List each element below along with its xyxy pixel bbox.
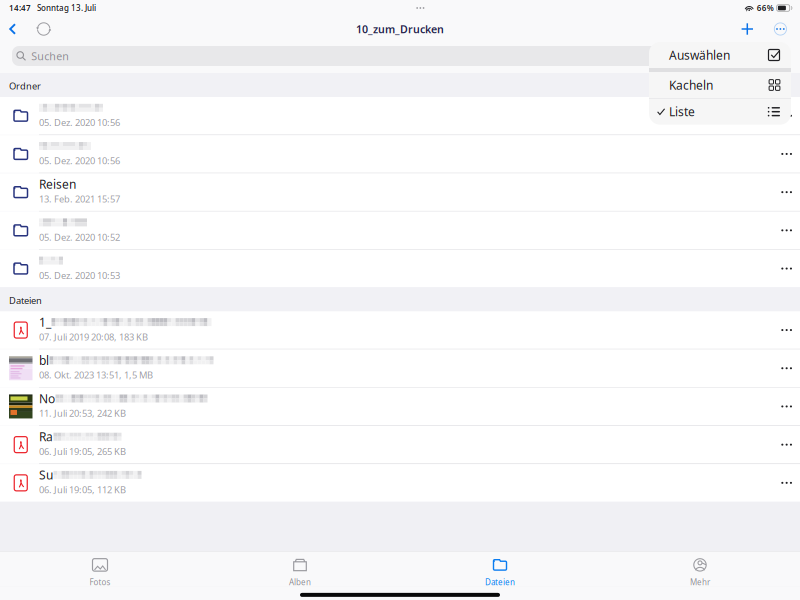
staticText: 66% — [757, 3, 774, 13]
button[interactable]: Fotos — [0, 552, 200, 587]
staticText: Reisen — [39, 176, 76, 192]
staticText: Su — [39, 467, 53, 483]
staticText: Ra — [39, 429, 53, 445]
button[interactable]: 05. Dez. 2020 10:56 — [0, 135, 800, 173]
staticText: bl — [39, 352, 49, 368]
staticText: 06. Juli 19:05, 112 KB — [39, 483, 126, 496]
button[interactable]: Liste — [649, 99, 791, 125]
button[interactable]: Mehr — [600, 552, 800, 587]
staticText: Auswählen — [669, 47, 730, 63]
staticText: 08. Okt. 2023 13:51, 1,5 MB — [39, 369, 153, 381]
button[interactable]: 1_ — [0, 311, 800, 349]
button[interactable]: 05. Dez. 2020 10:53 — [0, 250, 800, 287]
button[interactable]: Zurück — [4, 18, 21, 40]
staticText: Sonntag 13. Juli — [37, 3, 96, 13]
button[interactable]: Auswählen — [649, 42, 791, 68]
staticText: 14:47 — [9, 3, 31, 13]
button[interactable]: Kacheln — [649, 72, 791, 98]
staticText: 10_zum_Drucken — [356, 22, 444, 36]
button[interactable]: Weitere Optionen — [768, 18, 793, 40]
button[interactable]: Aktualisieren — [31, 17, 56, 40]
staticText: 13. Feb. 2021 15:57 — [39, 193, 120, 205]
staticText: 07. Juli 2019 20:08, 183 KB — [39, 331, 148, 343]
staticText: Ordner — [9, 80, 41, 92]
staticText: 11. Juli 20:53, 242 KB — [39, 407, 126, 419]
button[interactable]: Dateien — [400, 552, 600, 587]
staticText: 05. Dez. 2020 10:53 — [39, 269, 120, 281]
button[interactable]: 05. Dez. 2020 10:56 — [0, 97, 800, 134]
button[interactable]: Reisen — [0, 173, 800, 211]
staticText: Kacheln — [669, 77, 713, 93]
staticText: No — [39, 390, 55, 406]
staticText: Dateien — [9, 294, 42, 306]
staticText: 05. Dez. 2020 10:56 — [39, 116, 120, 129]
staticText: Suchen — [31, 49, 69, 63]
button[interactable]: 05. Dez. 2020 10:52 — [0, 212, 800, 249]
staticText: 05. Dez. 2020 10:56 — [39, 154, 120, 167]
staticText: 06. Juli 19:05, 265 KB — [39, 445, 126, 458]
staticText: Fotos — [89, 577, 110, 587]
button[interactable]: Hinzufügen — [735, 18, 760, 39]
staticText: Alben — [289, 577, 311, 587]
button[interactable]: Ra — [0, 426, 800, 463]
button[interactable]: No — [0, 388, 800, 425]
staticText: 1_ — [39, 314, 51, 330]
staticText: Dateien — [485, 577, 515, 587]
staticText: Liste — [669, 104, 695, 120]
button[interactable]: bl — [0, 349, 800, 387]
button[interactable]: Su — [0, 464, 800, 502]
button[interactable]: Alben — [200, 552, 400, 587]
staticText: Mehr — [690, 577, 710, 587]
staticText: 05. Dez. 2020 10:52 — [39, 231, 120, 243]
